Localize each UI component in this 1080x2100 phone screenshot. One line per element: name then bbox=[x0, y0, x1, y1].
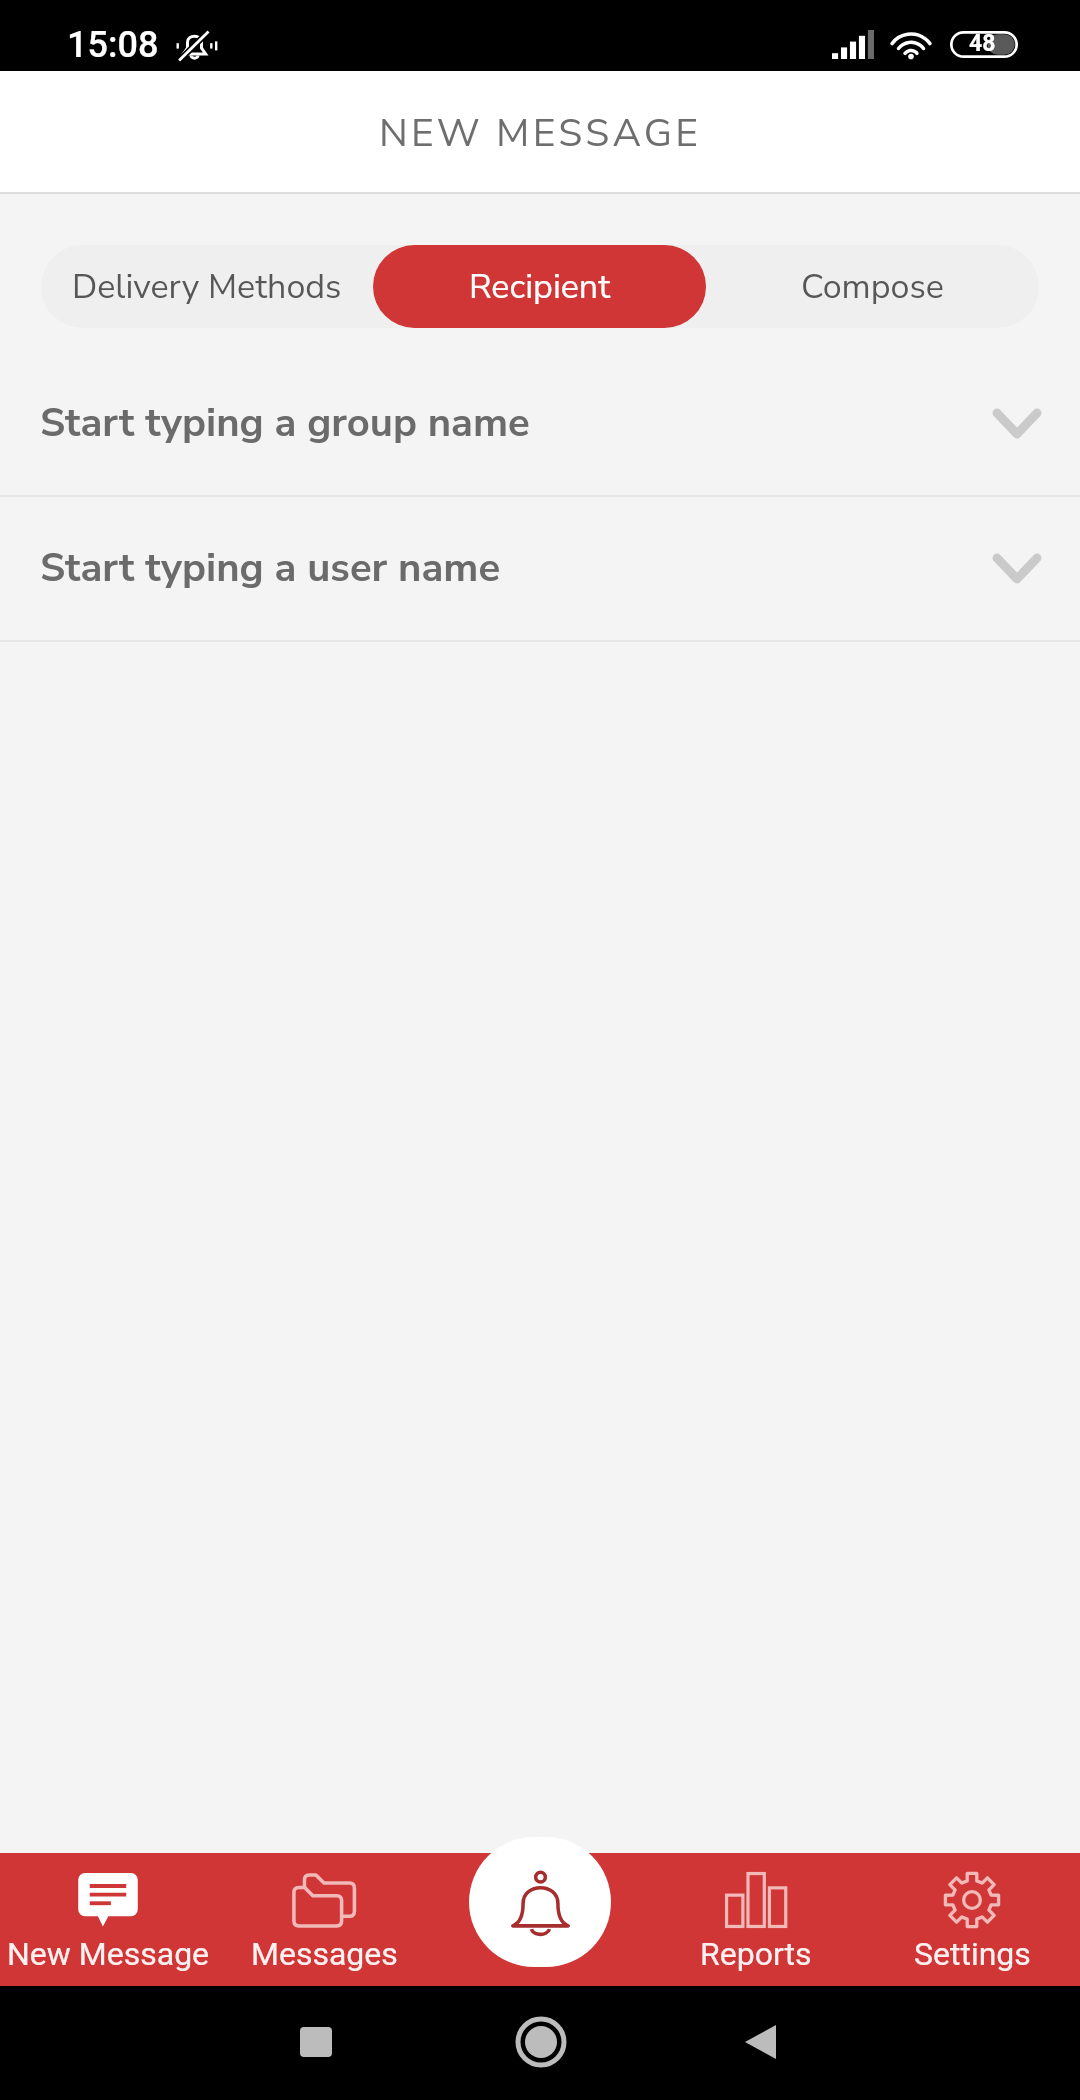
staticText: Start typing a group name bbox=[40, 396, 997, 451]
staticText: Settings bbox=[914, 1935, 1031, 1973]
staticText: NEW MESSAGE bbox=[379, 107, 702, 160]
staticText: Delivery Methods bbox=[72, 264, 342, 310]
button[interactable]: Reports bbox=[648, 1853, 864, 1986]
staticText: Reports bbox=[700, 1935, 812, 1973]
staticText: 48 bbox=[969, 30, 996, 57]
button[interactable]: Start typing a group name bbox=[0, 352, 1080, 495]
staticText: 15:08 bbox=[67, 24, 159, 66]
button[interactable]: Start typing a user name bbox=[0, 497, 1080, 640]
button[interactable]: Messages bbox=[216, 1853, 432, 1986]
button[interactable]: Settings bbox=[864, 1853, 1080, 1986]
staticText: Compose bbox=[801, 264, 944, 310]
staticText: New Message bbox=[7, 1935, 210, 1973]
staticText: Recipient bbox=[469, 264, 611, 310]
staticText: Start typing a user name bbox=[40, 541, 997, 596]
button[interactable]: Compose bbox=[706, 245, 1039, 328]
button[interactable]: Notifications bbox=[469, 1837, 611, 1967]
button[interactable]: New Message bbox=[0, 1853, 216, 1986]
button[interactable]: Recipient bbox=[373, 245, 706, 328]
staticText: Messages bbox=[251, 1935, 398, 1973]
button[interactable]: Delivery Methods bbox=[41, 245, 373, 328]
